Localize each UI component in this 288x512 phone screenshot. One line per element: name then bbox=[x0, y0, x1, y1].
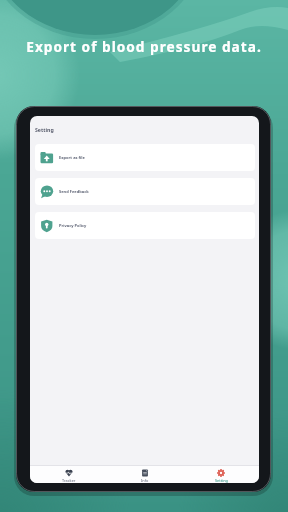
staticText: Info bbox=[141, 478, 149, 483]
staticText: Tracker bbox=[62, 478, 76, 483]
button[interactable]: Send Feedback bbox=[35, 178, 255, 205]
button[interactable]: Privacy Policy bbox=[35, 212, 255, 239]
staticText: Setting bbox=[35, 126, 54, 133]
button[interactable]: Setting bbox=[183, 466, 259, 483]
button[interactable]: Tracker bbox=[30, 466, 107, 483]
button[interactable]: Info bbox=[107, 466, 183, 483]
button[interactable]: Export as file bbox=[35, 144, 255, 171]
staticText: Export as file bbox=[59, 155, 85, 160]
staticText: Send Feedback bbox=[59, 189, 89, 194]
staticText: Setting bbox=[215, 478, 228, 483]
staticText: Export of blood pressure data. bbox=[0, 37, 288, 56]
staticText: Privacy Policy bbox=[59, 223, 87, 228]
